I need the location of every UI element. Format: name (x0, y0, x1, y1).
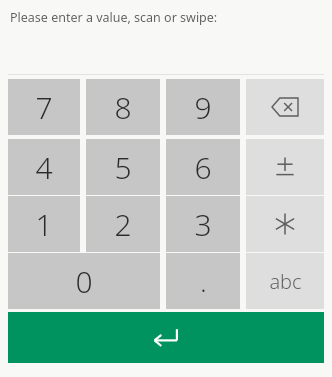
staticText: 7 (35, 87, 53, 128)
button[interactable]: 3 (166, 196, 240, 252)
button[interactable]: . (166, 253, 240, 309)
button[interactable]: 7 (8, 79, 80, 135)
staticText: 5 (114, 147, 132, 188)
staticText: 4 (35, 147, 53, 188)
button[interactable]: Backspace (246, 79, 324, 135)
button[interactable]: Plus minus sign (246, 139, 324, 195)
button[interactable]: 8 (86, 79, 160, 135)
staticText: . (200, 264, 207, 299)
button[interactable]: 6 (166, 139, 240, 195)
staticText: 2 (114, 204, 132, 245)
staticText: 8 (114, 87, 132, 128)
button[interactable]: Asterisk (246, 196, 324, 252)
button[interactable]: Enter (8, 312, 324, 363)
staticText: 3 (194, 204, 212, 245)
button[interactable]: 4 (8, 139, 80, 195)
staticText: Please enter a value, scan or swipe: (10, 9, 218, 26)
button[interactable]: 9 (166, 79, 240, 135)
staticText: abc (269, 268, 302, 295)
button[interactable]: 1 (8, 196, 80, 252)
staticText: 1 (35, 204, 53, 245)
staticText: 6 (194, 147, 212, 188)
staticText: 9 (194, 87, 212, 128)
button[interactable]: abc (246, 253, 324, 309)
staticText: 0 (75, 261, 93, 302)
button[interactable]: 5 (86, 139, 160, 195)
button[interactable]: 0 (8, 253, 160, 309)
button[interactable]: 2 (86, 196, 160, 252)
